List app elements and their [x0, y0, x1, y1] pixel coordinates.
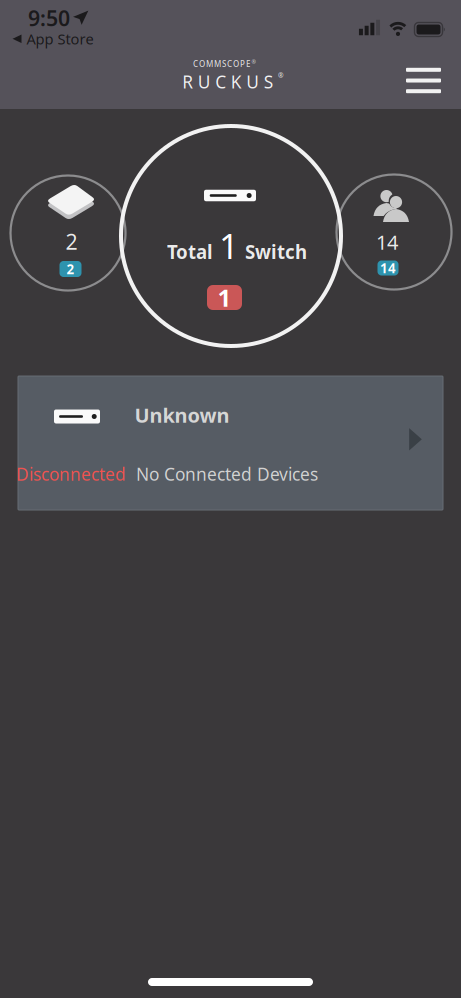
staticText: 1 — [219, 222, 239, 268]
staticText: Total — [167, 239, 213, 264]
staticText: ® — [251, 58, 255, 66]
button[interactable]: 14 clients — [336, 174, 451, 289]
button[interactable]: 2 access points — [10, 175, 125, 290]
staticText: COMMSCOPE — [193, 59, 250, 69]
staticText: 2 — [65, 227, 77, 256]
staticText: Disconnected — [16, 462, 126, 485]
staticText: Unknown — [134, 402, 229, 428]
staticText: 1 — [217, 282, 231, 313]
staticText: No Connected Devices — [136, 462, 318, 485]
staticText: 2 — [66, 260, 74, 278]
staticText: 14 — [376, 229, 398, 255]
button[interactable]: Back to App Store — [12, 29, 93, 49]
button[interactable]: Total 1 Switch — [121, 126, 341, 346]
staticText: 14 — [380, 259, 396, 277]
button[interactable]: Menu — [401, 63, 445, 97]
staticText: Switch — [245, 239, 307, 264]
staticText: RUCKUS — [182, 70, 274, 93]
staticText: 9:50 — [28, 4, 70, 32]
staticText: ® — [278, 71, 284, 80]
staticText: App Store — [26, 29, 93, 49]
button[interactable]: Unknown switch, disconnected, no connect… — [18, 376, 443, 510]
